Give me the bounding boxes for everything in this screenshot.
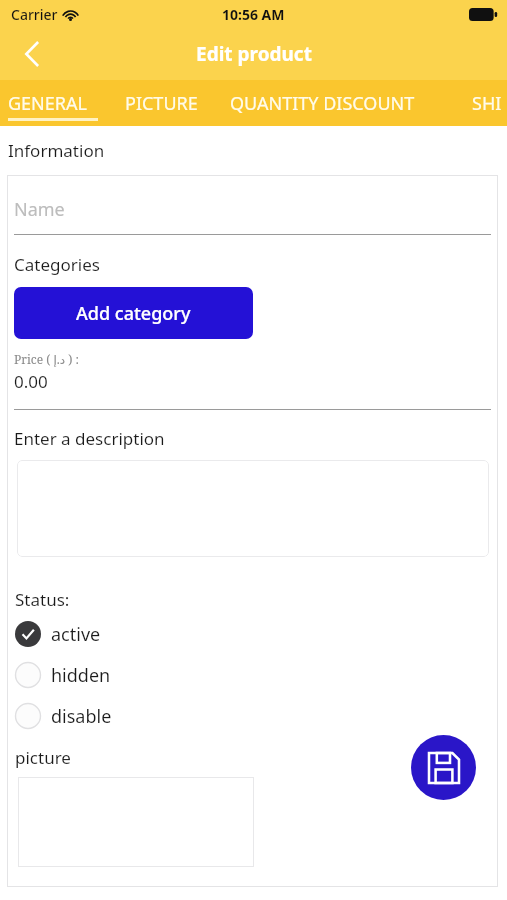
button[interactable]: Add category bbox=[14, 287, 253, 339]
button[interactable] bbox=[17, 460, 489, 557]
staticText: SHIPPING bbox=[472, 91, 507, 116]
staticText: Enter a description bbox=[14, 427, 165, 450]
staticText: Carrier bbox=[11, 5, 58, 24]
button[interactable]: QUANTITY DISCOUNT bbox=[230, 91, 452, 123]
staticText: Add category bbox=[76, 301, 191, 326]
button[interactable]: disable bbox=[15, 700, 498, 732]
staticText: Status: bbox=[15, 588, 70, 611]
button[interactable]: SHIPPING bbox=[472, 91, 507, 123]
button[interactable] bbox=[18, 777, 254, 867]
staticText: Information bbox=[8, 139, 105, 162]
staticText: picture bbox=[15, 746, 71, 769]
staticText: disable bbox=[51, 704, 112, 729]
button[interactable]: Back bbox=[16, 37, 50, 71]
staticText: PICTURE bbox=[125, 91, 198, 116]
staticText: QUANTITY DISCOUNT bbox=[230, 91, 415, 116]
button[interactable]: Save bbox=[411, 735, 476, 800]
button[interactable]: GENERAL bbox=[8, 91, 98, 123]
staticText: Name bbox=[14, 197, 65, 222]
button[interactable]: active bbox=[15, 618, 498, 650]
staticText: hidden bbox=[51, 663, 111, 688]
staticText: Price ( د.إ ) : bbox=[14, 351, 79, 367]
staticText: Edit product bbox=[196, 41, 312, 67]
button[interactable]: hidden bbox=[15, 659, 498, 691]
staticText: 10:56 AM bbox=[222, 5, 285, 24]
staticText: Categories bbox=[14, 253, 100, 276]
staticText: 0.00 bbox=[14, 370, 48, 393]
staticText: GENERAL bbox=[8, 91, 87, 116]
staticText: active bbox=[51, 622, 101, 647]
button[interactable]: PICTURE bbox=[125, 91, 211, 123]
